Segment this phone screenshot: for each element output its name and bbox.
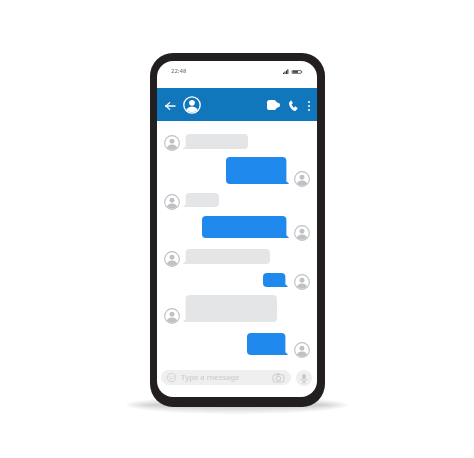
- button[interactable]: [263, 273, 288, 287]
- button[interactable]: [183, 193, 219, 207]
- button[interactable]: [202, 216, 289, 238]
- button[interactable]: Call: [286, 97, 301, 114]
- button[interactable]: Contact profile: [183, 96, 201, 114]
- button[interactable]: [183, 249, 270, 264]
- button[interactable]: [183, 134, 248, 149]
- button[interactable]: Back: [162, 98, 178, 113]
- button[interactable]: [247, 333, 288, 355]
- button[interactable]: Type a message: [161, 370, 291, 385]
- button[interactable]: [183, 295, 277, 322]
- button[interactable]: [226, 157, 289, 184]
- button[interactable]: More options: [302, 97, 315, 114]
- button[interactable]: Video call: [263, 96, 283, 113]
- staticText: Type a message: [181, 372, 240, 383]
- staticText: 22:48: [171, 67, 187, 75]
- button[interactable]: Voice message: [296, 370, 312, 386]
